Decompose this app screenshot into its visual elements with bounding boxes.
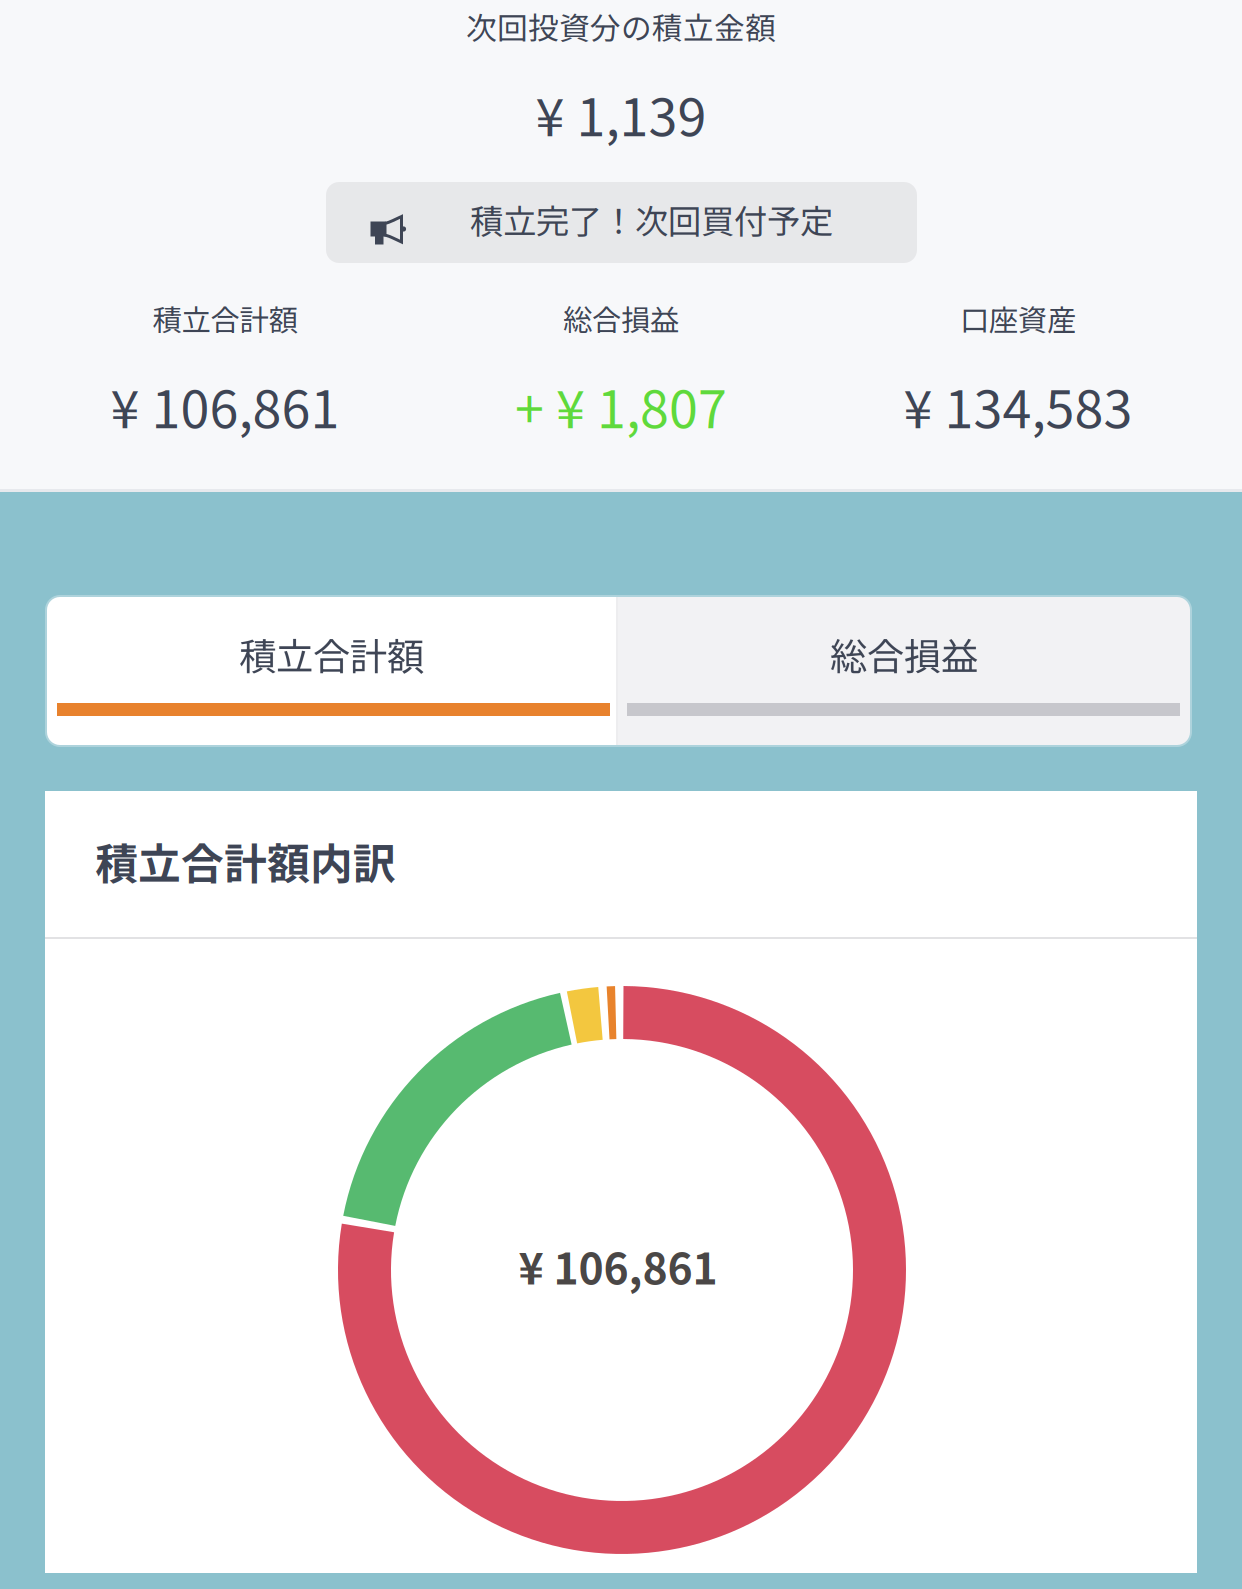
staticText: 口座資産 xyxy=(960,297,1076,339)
staticText: ¥ 1,139 xyxy=(535,76,706,151)
staticText: ¥ 106,861 xyxy=(518,1235,717,1297)
button[interactable]: 積立合計額 xyxy=(47,597,616,745)
staticText: ¥ 134,583 xyxy=(903,368,1132,443)
staticText: + ¥ 1,807 xyxy=(515,368,727,443)
staticText: 積立合計額内訳 xyxy=(95,830,396,892)
staticText: 総合損益 xyxy=(830,627,978,681)
staticText: 積立合計額 xyxy=(152,297,297,339)
staticText: 次回投資分の積立金額 xyxy=(466,4,776,48)
staticText: ¥ 106,861 xyxy=(110,368,339,443)
staticText: 総合損益 xyxy=(563,297,679,339)
button[interactable]: 総合損益 xyxy=(618,597,1190,745)
button[interactable]: 積立完了！次回買付予定 xyxy=(326,182,917,263)
staticText: 積立合計額 xyxy=(239,627,424,681)
staticText: 積立完了！次回買付予定 xyxy=(470,195,833,243)
